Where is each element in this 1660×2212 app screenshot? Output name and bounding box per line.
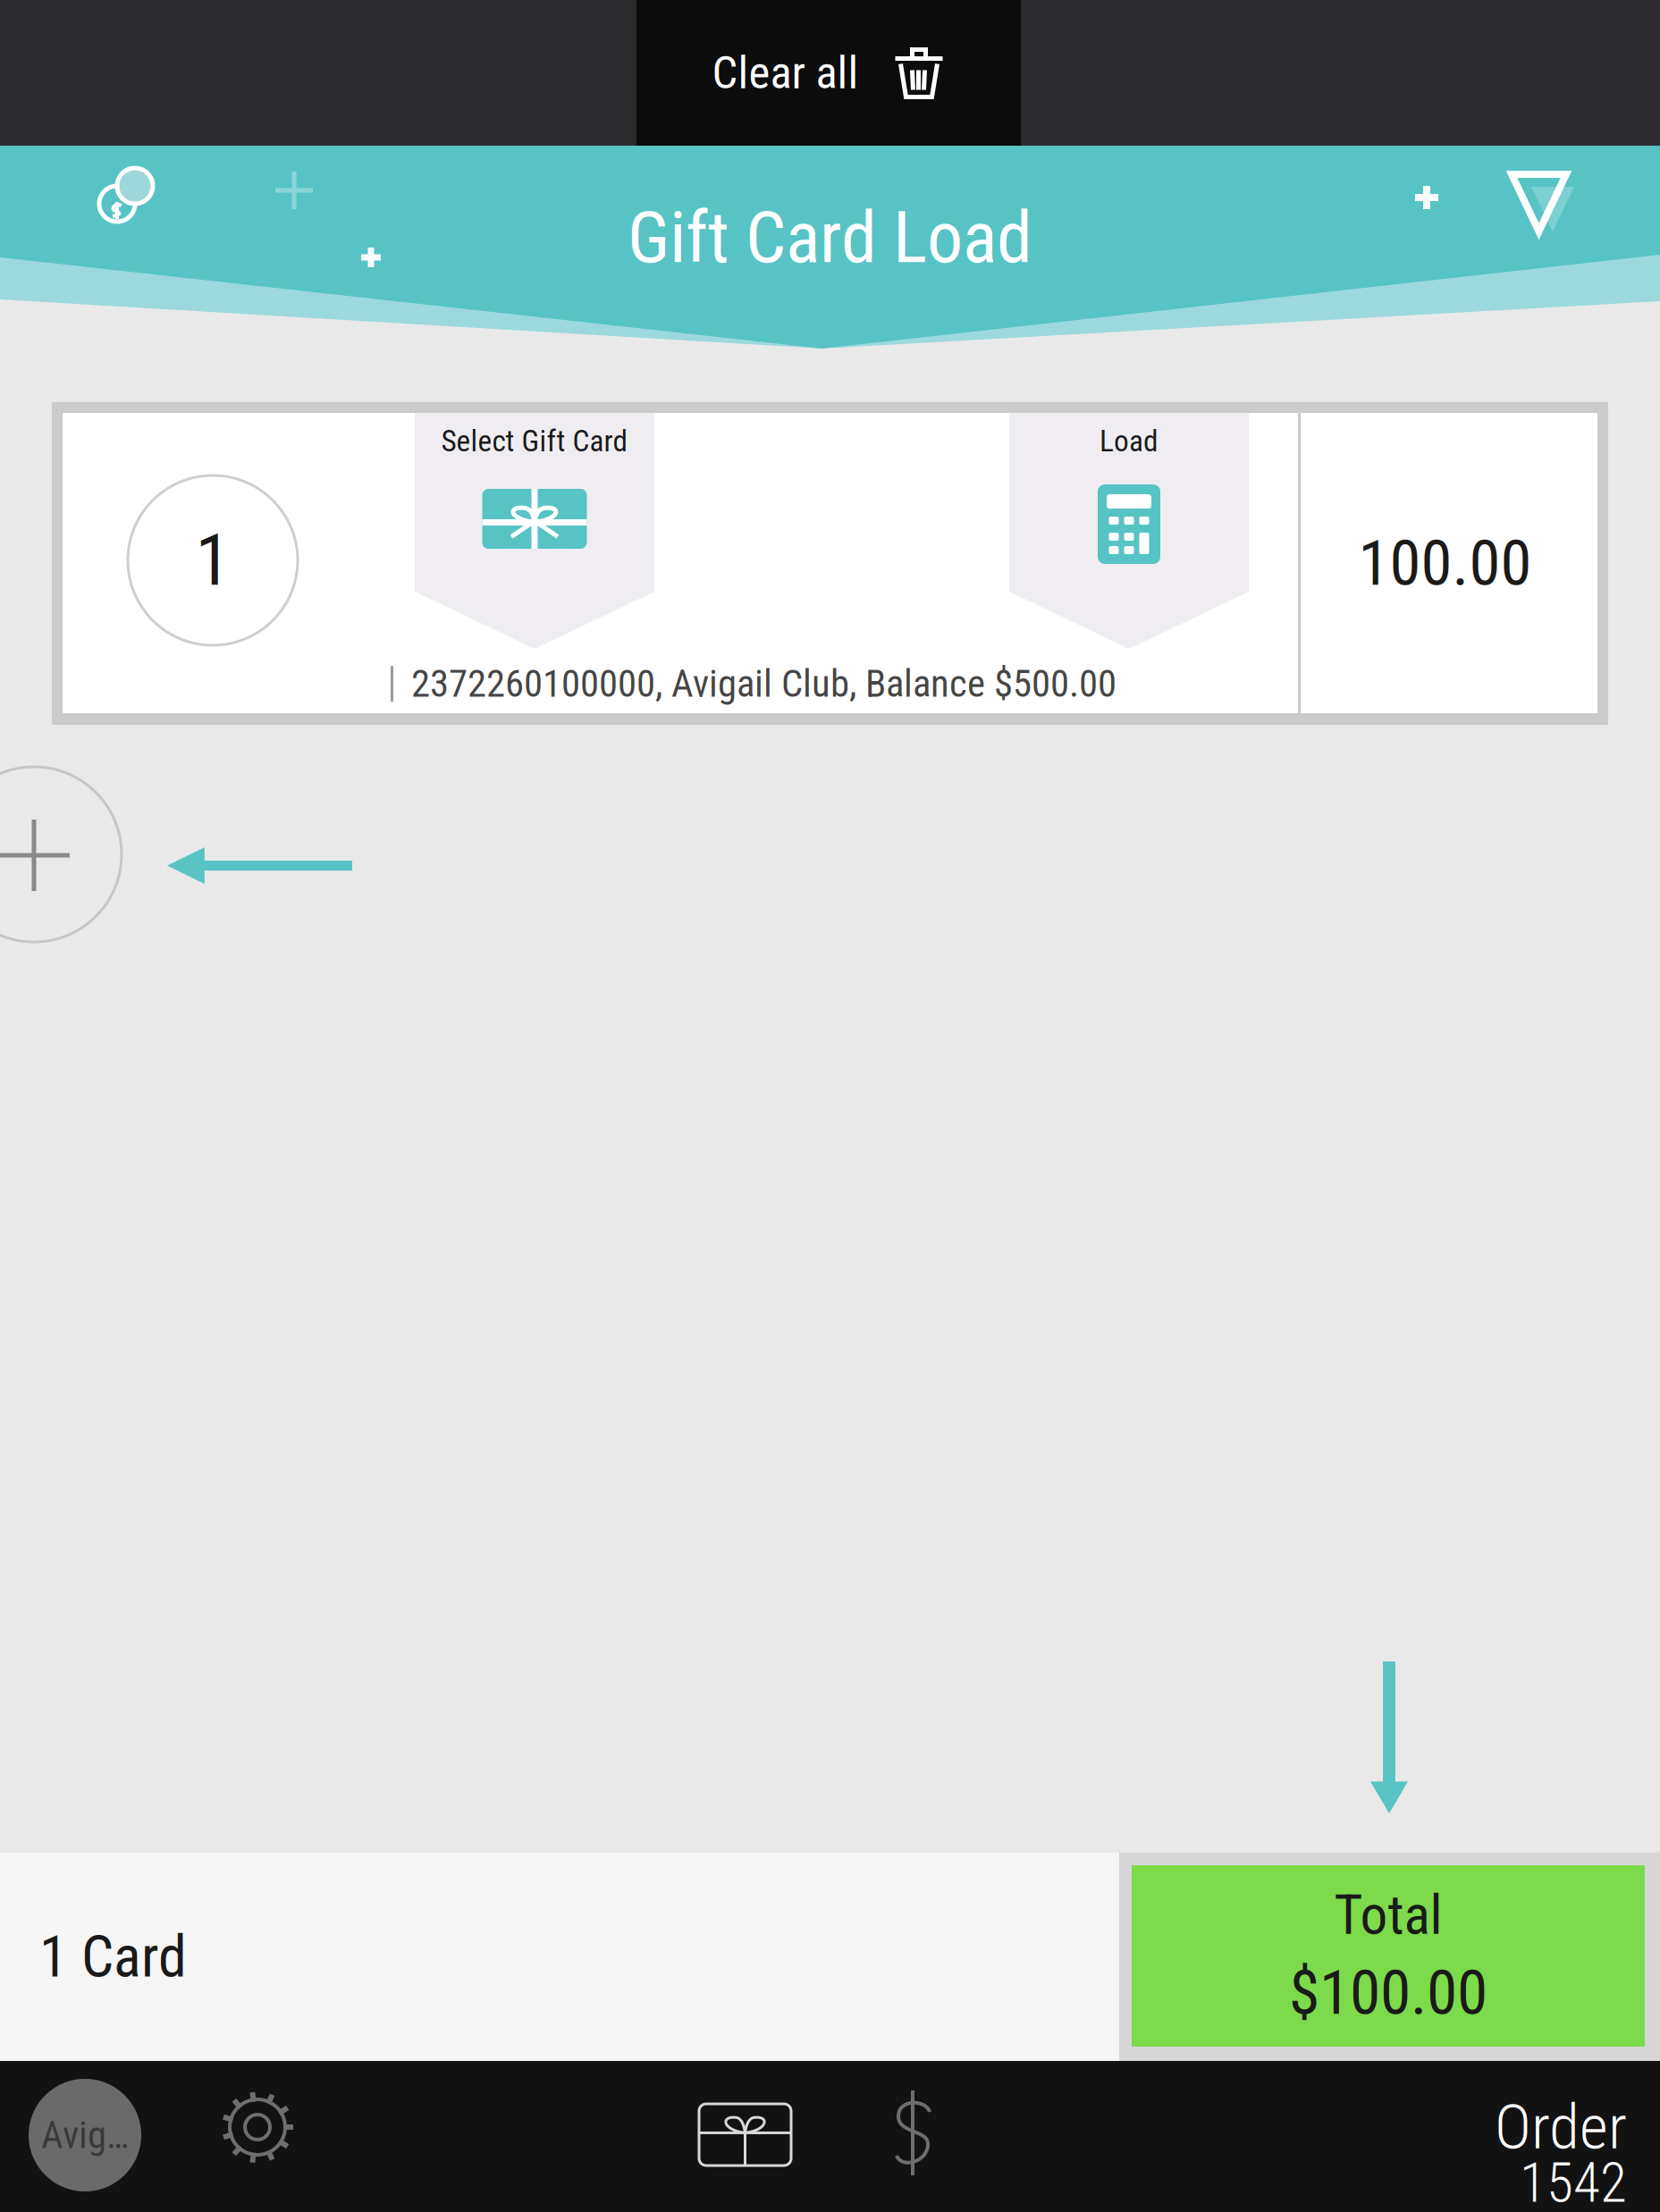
staticText: 100.00	[1358, 526, 1532, 600]
staticText: Load	[1100, 424, 1159, 459]
staticText: Avig…	[41, 2113, 129, 2157]
staticText: 2372260100000, Avigail Club, Balance $50…	[411, 661, 1116, 706]
button[interactable]: Settings	[219, 2089, 296, 2166]
button[interactable]: 100.00	[1301, 413, 1589, 713]
staticText: Select Gift Card	[441, 424, 628, 459]
staticText: Total	[1334, 1883, 1442, 1947]
staticText: Order	[1495, 2091, 1627, 2163]
button[interactable]: Account Avigail	[29, 2079, 141, 2191]
staticText: Gift Card Load	[628, 196, 1032, 280]
button[interactable]: Clear all	[636, 0, 1021, 146]
button[interactable]: Add card	[0, 767, 122, 942]
button[interactable]: Load	[1009, 413, 1249, 649]
button[interactable]: Quantity 1	[128, 475, 298, 645]
button[interactable]: Payments	[892, 2090, 934, 2175]
button[interactable]: Select Gift Card	[415, 413, 654, 649]
staticText: 1 Card	[39, 1923, 187, 1990]
staticText: $100.00	[1289, 1956, 1487, 2029]
button[interactable]: Gift Cards	[699, 2104, 791, 2166]
staticText: 1542	[1520, 2151, 1627, 2212]
button[interactable]: Order 1542	[1332, 2104, 1627, 2202]
button[interactable]: Total	[1132, 1865, 1645, 2047]
staticText: Clear all	[712, 46, 859, 99]
staticText: 1	[195, 518, 230, 602]
